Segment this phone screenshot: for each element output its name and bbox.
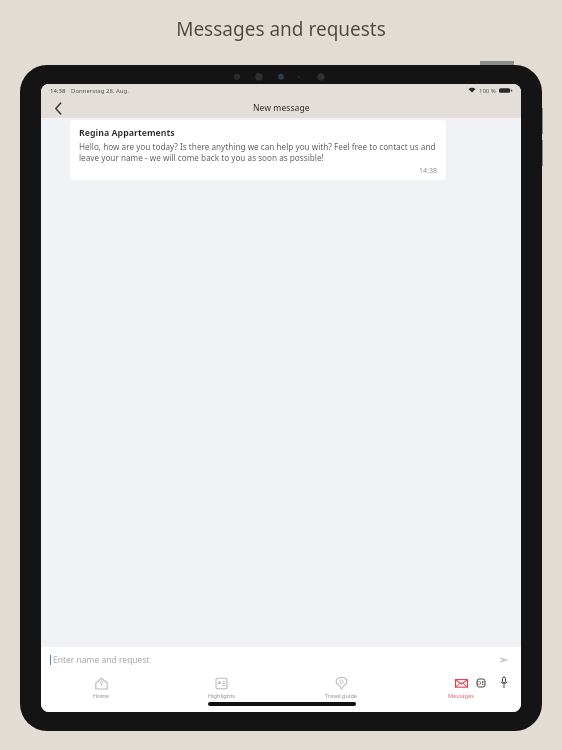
staticText: Hello, how are you today? Is there anyth…: [79, 141, 437, 163]
staticText: New message: [253, 102, 310, 114]
staticText: DE: [477, 679, 485, 687]
staticText: Messages and requests: [176, 16, 386, 42]
staticText: Travel guide: [325, 692, 357, 700]
button[interactable]: Messages: [401, 672, 521, 712]
button[interactable]: Voice input: [497, 676, 510, 689]
button[interactable]: Regina Appartements: [70, 120, 446, 180]
staticText: Regina Appartements: [79, 127, 175, 139]
button[interactable]: Send: [496, 652, 512, 668]
staticText: 14:38: [50, 87, 66, 95]
button[interactable]: Enter name and request: [53, 654, 496, 666]
staticText: 14:38: [419, 166, 437, 176]
staticText: Home: [93, 692, 109, 700]
staticText: 100 %: [479, 87, 496, 95]
button[interactable]: Highlights: [161, 672, 281, 712]
button[interactable]: Back: [48, 98, 68, 118]
button[interactable]: Language DE: [474, 678, 488, 688]
button[interactable]: Home: [41, 672, 161, 712]
button[interactable]: Travel guide: [281, 672, 401, 712]
staticText: Highlights: [208, 692, 235, 700]
staticText: Donnerstag 28. Aug.: [71, 87, 129, 95]
staticText: Messages: [448, 692, 474, 700]
